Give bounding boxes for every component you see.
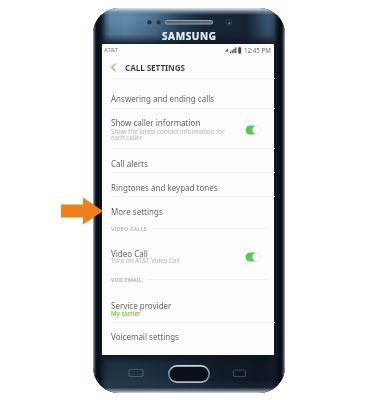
staticText: Answering and ending calls	[111, 93, 215, 104]
staticText: Ringtones and keypad tones	[111, 182, 218, 193]
button[interactable]: Show caller information	[102, 112, 274, 132]
staticText: Show caller information	[111, 117, 201, 128]
staticText: Call alerts	[111, 158, 148, 169]
staticText: VIDEO CALLS	[111, 225, 148, 232]
staticText: AT&T	[104, 46, 118, 54]
staticText: Voicemail settings	[111, 331, 179, 342]
staticText: CALL SETTINGS	[125, 62, 185, 73]
staticText: 12:45 PM	[244, 46, 271, 54]
button[interactable]: Back	[102, 57, 125, 78]
button[interactable]: Back	[102, 57, 274, 78]
button[interactable]: Answering and ending calls	[102, 88, 274, 108]
staticText: My carrier	[111, 309, 141, 317]
button[interactable]: Toggle	[243, 250, 265, 264]
staticText: Video Call	[111, 248, 148, 259]
staticText: More settings	[111, 206, 163, 217]
staticText: Show the latest contact information for …	[111, 127, 225, 142]
button[interactable]: Service provider	[102, 295, 274, 315]
staticText: SAMSUNG	[162, 29, 217, 43]
button[interactable]: Call alerts	[102, 153, 274, 173]
button[interactable]: Toggle	[243, 123, 265, 137]
button[interactable]: Voicemail settings	[102, 326, 274, 346]
button[interactable]: Video Call	[102, 243, 274, 263]
staticText: Service provider	[111, 300, 172, 311]
button[interactable]: More settings	[102, 201, 274, 221]
staticText: VOICEMAIL	[111, 276, 143, 283]
button[interactable]: Ringtones and keypad tones	[102, 177, 274, 197]
staticText: Turn on AT&T Video Call	[111, 256, 180, 264]
